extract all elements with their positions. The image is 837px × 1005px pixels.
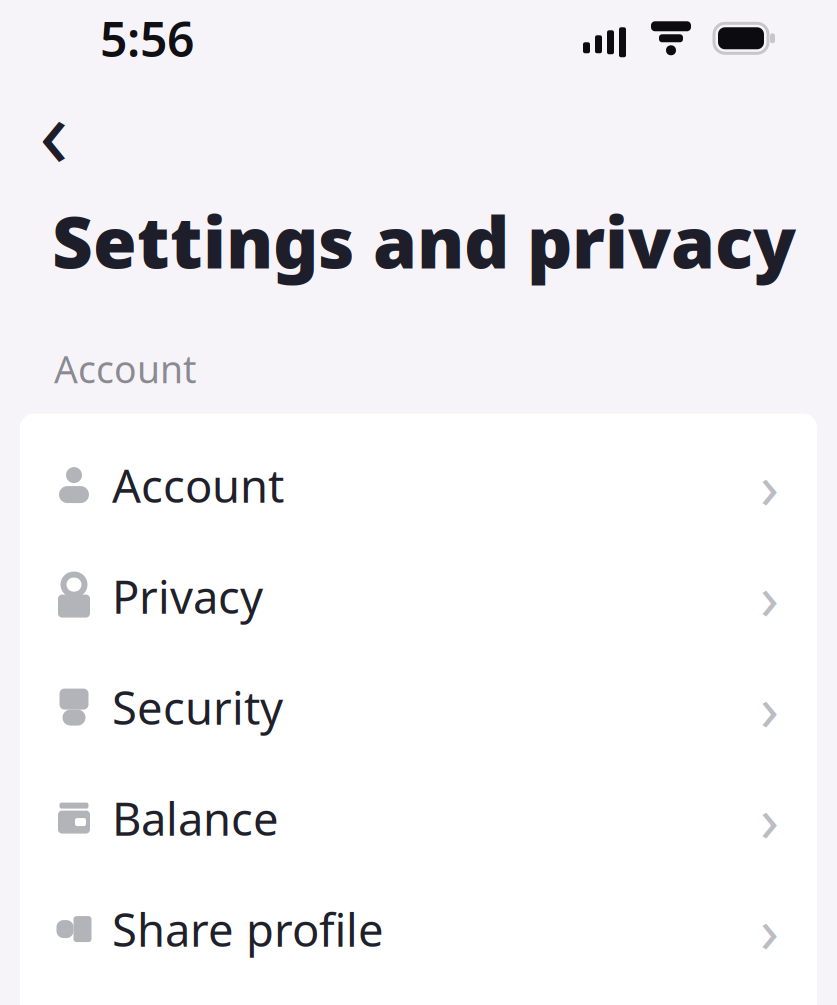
staticText: ‹ — [39, 66, 69, 194]
button[interactable]: Account — [20, 430, 817, 541]
staticText: Balance — [112, 788, 279, 848]
staticText: Account — [54, 344, 196, 394]
staticText: Privacy — [112, 566, 263, 626]
button[interactable]: Share profile — [20, 874, 817, 985]
button[interactable]: Back — [18, 92, 90, 168]
staticText: Settings and privacy — [52, 194, 796, 288]
button[interactable]: Balance — [20, 763, 817, 874]
staticText: › — [760, 777, 779, 859]
staticText: Share profile — [112, 899, 384, 959]
staticText: › — [760, 555, 779, 637]
staticText: › — [760, 888, 779, 970]
staticText: › — [760, 666, 779, 748]
staticText: Account — [112, 455, 284, 515]
staticText: Security — [112, 677, 283, 737]
button[interactable]: Security — [20, 652, 817, 763]
staticText: › — [760, 444, 779, 526]
staticText: 5:56 — [100, 6, 194, 70]
button[interactable]: Privacy — [20, 541, 817, 652]
